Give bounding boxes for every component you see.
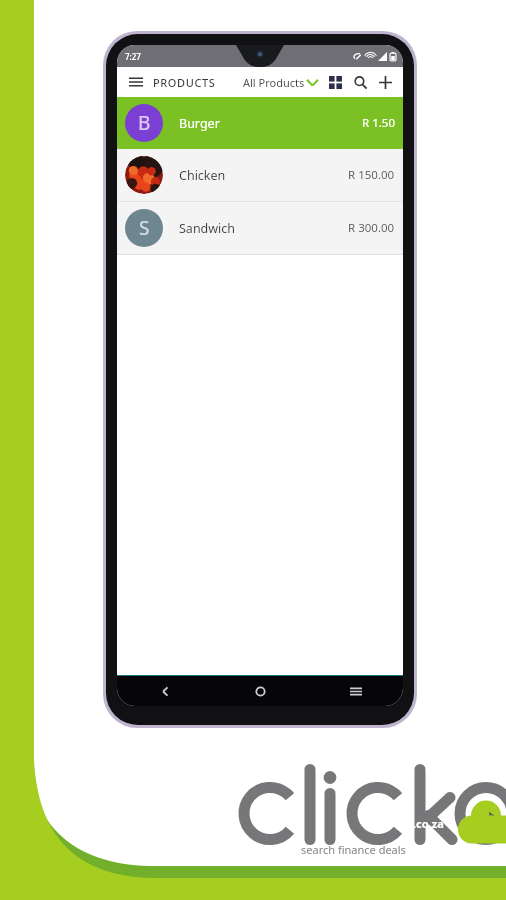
staticText: Sandwich	[179, 220, 236, 237]
staticText: Chicken	[179, 167, 226, 184]
staticText: S	[139, 215, 150, 241]
button[interactable]: S	[117, 202, 403, 254]
button[interactable]: Back	[117, 676, 213, 706]
staticText: search finance deals	[301, 842, 406, 857]
staticText: .co.za	[413, 816, 444, 831]
button[interactable]: Recent apps	[308, 676, 403, 706]
staticText: R 150.00	[348, 167, 395, 183]
button[interactable]: B	[117, 97, 403, 149]
button[interactable]: Home	[213, 676, 308, 706]
button[interactable]: Grid view	[325, 72, 345, 92]
button[interactable]: All Products	[243, 75, 318, 90]
staticText: Burger	[179, 115, 220, 132]
staticText: All Products	[243, 75, 305, 90]
button[interactable]: Search	[350, 72, 370, 92]
button[interactable]: Add product	[375, 72, 395, 92]
staticText: 7:27	[125, 51, 141, 62]
button[interactable]: Menu	[125, 71, 147, 93]
staticText: R 300.00	[348, 220, 395, 236]
staticText: B	[138, 110, 151, 136]
button[interactable]: Chicken	[117, 149, 403, 201]
staticText: R 1.50	[362, 115, 395, 131]
staticText: PRODUCTS	[153, 75, 216, 90]
